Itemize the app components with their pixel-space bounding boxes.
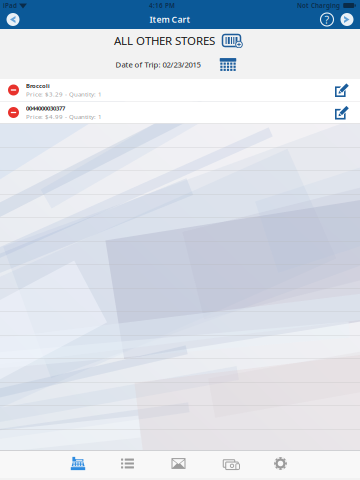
button[interactable]: Payments bbox=[204, 450, 255, 477]
button[interactable]: Edit 0044000030377 bbox=[329, 101, 355, 123]
staticText: Broccoli bbox=[26, 82, 50, 90]
staticText: ALL OTHER STORES bbox=[114, 33, 215, 48]
button[interactable]: Edit Broccoli bbox=[329, 79, 355, 101]
button[interactable]: Remove 0044000030377 bbox=[5, 101, 22, 123]
button[interactable]: Messages bbox=[153, 450, 204, 477]
staticText: Not Charging bbox=[297, 1, 340, 10]
staticText: Price: $3.29 - Quantity: 1 bbox=[26, 90, 102, 98]
button[interactable]: Change date bbox=[200, 57, 236, 71]
staticText: 0044000030377 bbox=[26, 104, 65, 112]
button[interactable]: Remove Broccoli bbox=[5, 79, 22, 101]
staticText: Price: $4.99 - Quantity: 1 bbox=[26, 112, 102, 121]
staticText: ? bbox=[324, 12, 329, 27]
button[interactable]: Lists bbox=[102, 450, 153, 477]
staticText: iPad bbox=[3, 1, 17, 10]
button[interactable]: Help bbox=[317, 10, 337, 28]
button[interactable]: Forward bbox=[337, 10, 357, 28]
button[interactable]: Scan barcode bbox=[215, 33, 242, 48]
button[interactable]: Back bbox=[3, 10, 23, 28]
button[interactable]: Register bbox=[54, 450, 102, 477]
staticText: Date of Trip: 02/23/2015 bbox=[115, 59, 200, 70]
staticText: Item Cart bbox=[149, 14, 190, 25]
staticText: 4:16 PM bbox=[149, 1, 175, 10]
button[interactable]: Settings bbox=[255, 450, 306, 477]
